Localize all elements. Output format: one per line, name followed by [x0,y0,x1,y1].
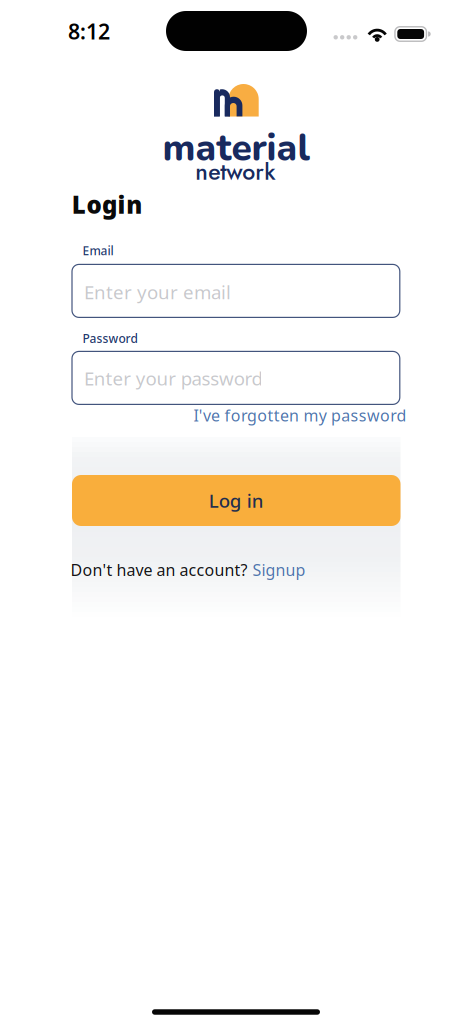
button[interactable]: Log in [72,475,400,526]
button[interactable]: I've forgotten my password [193,405,406,426]
staticText: Password [83,330,138,346]
staticText: Email [83,243,114,258]
staticText: Enter your email [84,280,231,304]
staticText: Enter your password [84,366,262,391]
staticText: network [195,155,275,188]
button[interactable]: Signup [252,559,305,580]
staticText: Login [72,189,142,220]
button[interactable] [72,351,400,404]
staticText: Don't have an account? [70,559,247,580]
staticText: material [162,123,309,173]
staticText: I've forgotten my password [193,405,406,426]
staticText: 8:12 [68,17,110,45]
button[interactable] [72,264,400,317]
staticText: Signup [252,559,305,580]
staticText: Log in [209,488,264,513]
